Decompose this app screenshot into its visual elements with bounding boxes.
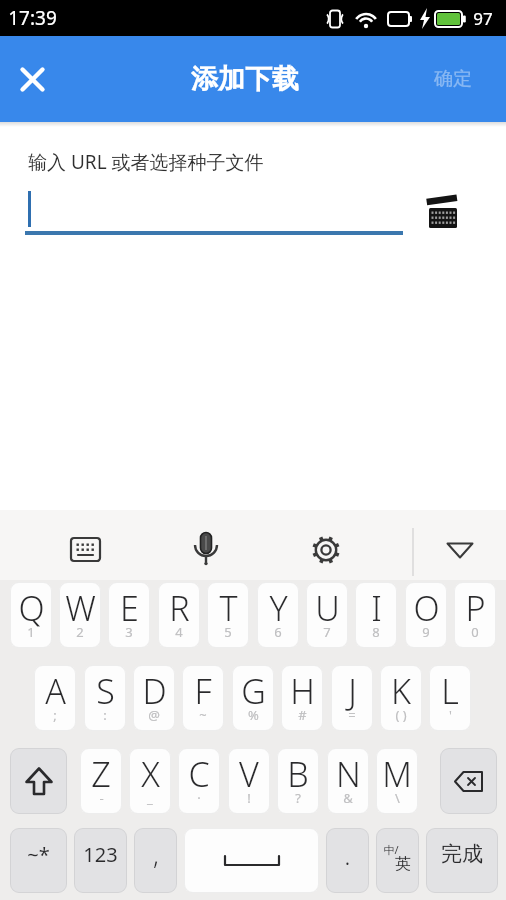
staticText: 9 — [422, 623, 430, 641]
staticText: , — [153, 837, 159, 872]
staticText: Q — [18, 585, 45, 631]
staticText: % — [248, 706, 259, 724]
button[interactable]: G — [232, 665, 274, 731]
button[interactable]: V — [228, 748, 270, 814]
button[interactable] — [427, 196, 459, 230]
button[interactable]: F — [182, 665, 224, 731]
button[interactable]: R — [158, 582, 200, 648]
staticText: ! — [247, 789, 251, 807]
staticText: A — [45, 668, 66, 714]
staticText: 6 — [274, 623, 282, 641]
staticText: Z — [91, 751, 111, 797]
button[interactable]: N — [327, 748, 369, 814]
button[interactable]: A — [34, 665, 76, 731]
button[interactable] — [184, 828, 319, 893]
button[interactable]: Z — [80, 748, 122, 814]
button[interactable]: ~* — [10, 828, 67, 893]
button[interactable]: 中/ — [376, 828, 419, 893]
staticText: ' — [449, 706, 452, 724]
staticText: 中/ — [383, 842, 399, 857]
button[interactable]: S — [84, 665, 126, 731]
staticText: - — [99, 789, 104, 807]
staticText: E — [120, 585, 139, 631]
button[interactable]: E — [108, 582, 150, 648]
staticText: · — [197, 789, 201, 807]
staticText: X — [141, 751, 160, 797]
staticText: Y — [269, 585, 288, 631]
staticText: 英 — [395, 854, 411, 874]
button[interactable]: , — [134, 828, 177, 893]
button[interactable]: I — [355, 582, 397, 648]
button[interactable] — [10, 748, 67, 814]
staticText: I — [371, 585, 382, 631]
button[interactable]: D — [133, 665, 175, 731]
staticText: O — [413, 585, 440, 631]
button[interactable]: 123 — [74, 828, 127, 893]
staticText: 97 — [473, 7, 493, 30]
staticText: N — [336, 751, 361, 797]
staticText: 输入 URL 或者选择种子文件 — [28, 149, 264, 175]
staticText: P — [465, 585, 486, 631]
staticText: \ — [395, 789, 400, 807]
button[interactable] — [296, 525, 356, 575]
button[interactable]: O — [405, 582, 447, 648]
staticText: . — [344, 837, 351, 872]
staticText: C — [188, 751, 210, 797]
staticText: B — [287, 751, 309, 797]
button[interactable]: M — [376, 748, 418, 814]
staticText: = — [348, 706, 356, 724]
staticText: U — [315, 585, 340, 631]
staticText: 4 — [175, 623, 183, 641]
button[interactable]: Q — [10, 582, 52, 648]
button[interactable]: 确定 — [426, 59, 480, 99]
staticText: J — [348, 668, 357, 714]
button[interactable]: . — [326, 828, 369, 893]
staticText: 添加下载 — [191, 62, 299, 96]
button[interactable] — [8, 55, 56, 103]
button[interactable]: T — [207, 582, 249, 648]
staticText: G — [241, 668, 266, 714]
button[interactable]: U — [306, 582, 348, 648]
staticText: V — [239, 751, 259, 797]
button[interactable]: 完成 — [426, 828, 498, 893]
button[interactable]: B — [277, 748, 319, 814]
staticText: M — [382, 751, 412, 797]
button[interactable]: Y — [257, 582, 299, 648]
staticText: 0 — [471, 623, 479, 641]
button[interactable]: W — [59, 582, 101, 648]
staticText: W — [65, 585, 96, 631]
staticText: & — [343, 789, 353, 807]
button[interactable]: X — [129, 748, 171, 814]
staticText: 3 — [125, 623, 133, 641]
staticText: ( ) — [395, 706, 407, 724]
staticText: S — [96, 668, 115, 714]
button[interactable]: H — [281, 665, 323, 731]
staticText: ? — [295, 789, 301, 807]
button[interactable]: C — [178, 748, 220, 814]
button[interactable] — [440, 748, 497, 814]
staticText: @ — [148, 706, 160, 724]
staticText: : — [103, 706, 107, 724]
staticText: 1 — [27, 623, 35, 641]
staticText: 17:39 — [8, 5, 57, 31]
button[interactable]: L — [429, 665, 471, 731]
staticText: L — [441, 668, 459, 714]
staticText: F — [194, 668, 212, 714]
button[interactable] — [56, 525, 116, 575]
button[interactable]: K — [380, 665, 422, 731]
staticText: # — [298, 706, 307, 724]
button[interactable] — [430, 525, 490, 575]
staticText: ~ — [199, 706, 207, 724]
button[interactable]: J — [331, 665, 373, 731]
staticText: 8 — [372, 623, 380, 641]
button[interactable] — [176, 525, 236, 575]
staticText: 确定 — [434, 67, 472, 91]
staticText: H — [290, 668, 315, 714]
button[interactable]: P — [454, 582, 496, 648]
staticText: 5 — [224, 623, 232, 641]
staticText: 7 — [323, 623, 331, 641]
staticText: ~* — [27, 841, 50, 868]
staticText: _ — [147, 789, 153, 807]
staticText: K — [391, 668, 411, 714]
staticText: T — [219, 585, 238, 631]
